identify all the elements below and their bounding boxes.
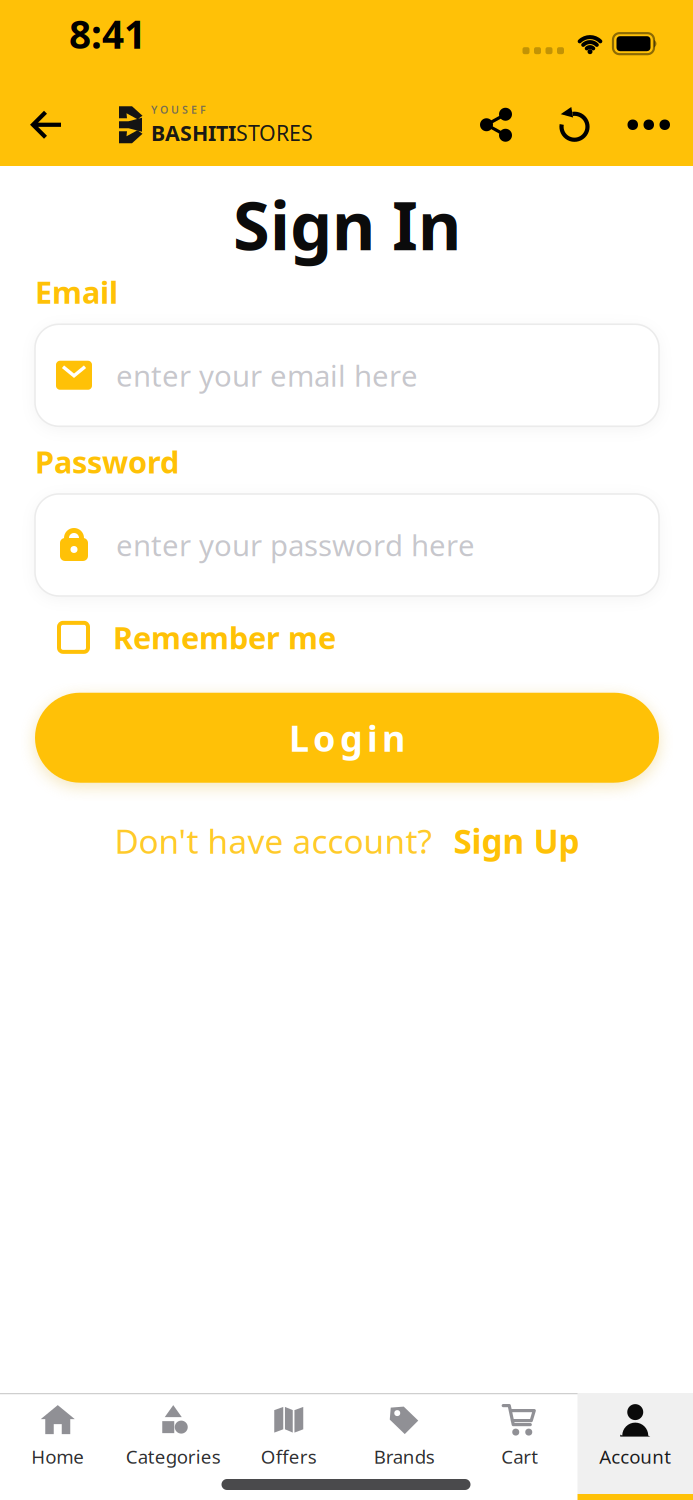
staticText: YOUSEF [151,102,206,117]
button[interactable]: More [591,119,693,130]
button[interactable]: Cart [462,1393,577,1500]
button[interactable]: Remember me [35,617,336,658]
staticText: Sign Up [453,819,579,863]
staticText: Offers [261,1444,317,1469]
button[interactable]: Login [35,693,659,783]
button[interactable]: Account [577,1393,693,1500]
staticText: enter your password here [116,525,475,564]
button[interactable]: Back [0,109,119,141]
button[interactable]: enter your email here [35,324,659,426]
staticText: Password [35,441,179,482]
staticText: Remember me [113,617,336,658]
staticText: Don't have account? [114,819,431,863]
staticText: Cart [501,1444,538,1469]
staticText: enter your email here [116,356,418,395]
staticText: Sign In [233,180,461,268]
staticText: BASHITISTORES [151,119,313,147]
staticText: Account [599,1444,671,1469]
staticText: Home [31,1444,84,1469]
button[interactable]: Brands [346,1393,462,1500]
button[interactable]: Offers [231,1393,346,1500]
staticText: 8:41 [69,8,146,59]
button[interactable]: Reload [512,107,591,143]
staticText: Email [35,271,118,312]
button[interactable]: Home [0,1393,115,1500]
staticText: Brands [374,1444,435,1469]
staticText: Login [289,714,405,762]
button[interactable]: Categories [115,1393,231,1500]
staticText: Categories [126,1444,221,1469]
button[interactable]: Share [479,108,512,142]
button[interactable]: enter your password here [35,494,659,596]
button[interactable]: Sign Up [453,819,579,863]
